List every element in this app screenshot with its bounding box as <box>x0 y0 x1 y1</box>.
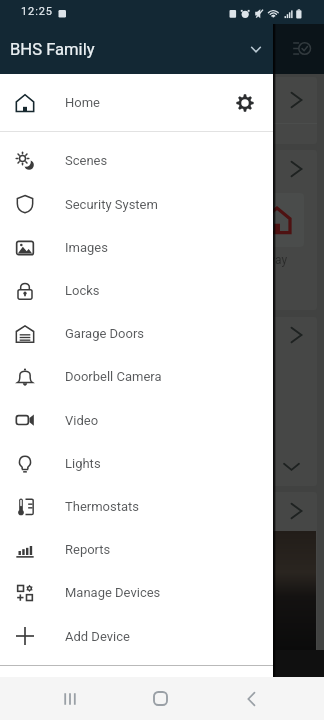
button[interactable]: Select devices <box>287 34 316 63</box>
staticText: Thermostats <box>65 499 140 514</box>
button[interactable]: Thermostats <box>0 485 273 528</box>
button[interactable]: Expand home selector <box>243 37 268 62</box>
staticText: Manage Devices <box>65 585 161 600</box>
staticText: Lights <box>65 456 101 471</box>
button[interactable]: Settings <box>227 85 263 121</box>
button[interactable]: Manage Devices <box>0 571 273 614</box>
button[interactable]: Reports <box>0 528 273 571</box>
button[interactable] <box>6 492 317 662</box>
button[interactable]: Security System <box>0 182 273 226</box>
button[interactable]: BHS Family <box>0 24 273 74</box>
staticText: Add Device <box>65 629 130 644</box>
staticText: Images <box>65 240 108 255</box>
button[interactable]: Scenes <box>0 139 273 182</box>
staticText: 12:25 <box>21 5 53 18</box>
button[interactable] <box>6 317 317 486</box>
staticText: Scenes <box>65 153 108 168</box>
button[interactable]: Video <box>0 398 273 442</box>
staticText: Security System <box>65 197 158 212</box>
staticText: BHS Family <box>10 40 95 59</box>
button[interactable]: Recent apps <box>56 685 83 712</box>
button[interactable]: Images <box>0 226 273 269</box>
staticText: Home <box>65 95 100 110</box>
button[interactable]: Locks <box>0 269 273 312</box>
staticText: Doorbell Camera <box>65 369 162 384</box>
staticText: Reports <box>65 542 111 557</box>
button[interactable] <box>6 77 317 144</box>
button[interactable]: Home <box>0 74 273 131</box>
button[interactable]: Doorbell Camera <box>0 355 273 398</box>
staticText: Locks <box>65 283 100 298</box>
button[interactable]: Add Device <box>0 614 273 658</box>
button[interactable]: Lights <box>0 442 273 485</box>
staticText: Driveway <box>239 253 288 267</box>
button[interactable]: Garage Doors <box>0 312 273 355</box>
button[interactable]: Home <box>147 685 174 712</box>
staticText: Garage Doors <box>65 326 145 341</box>
button[interactable]: Driveway <box>6 150 317 310</box>
button[interactable]: Back <box>238 685 265 712</box>
staticText: Video <box>65 413 99 428</box>
